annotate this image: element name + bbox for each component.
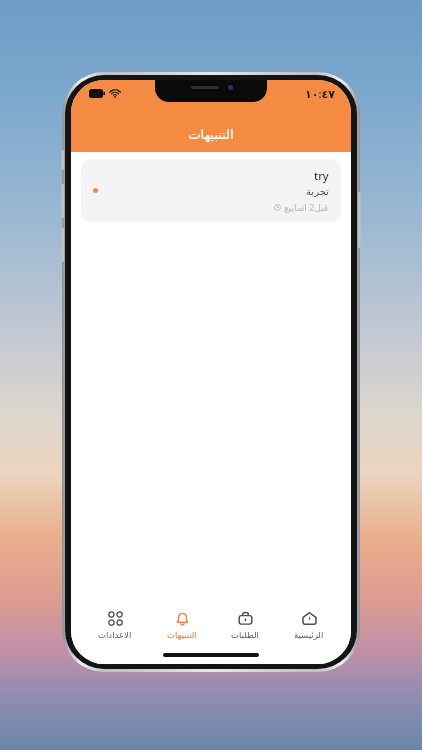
staticText: الاعدادات [98,630,132,640]
other: Notifications [174,610,191,627]
button[interactable]: try [81,159,341,222]
staticText: الطلبات [231,630,259,640]
other: Orders [237,610,254,627]
staticText: ١٠:٤٧ [305,86,335,101]
staticText: try [314,168,329,183]
button[interactable]: Notifications [159,608,205,642]
other: Home [301,610,318,627]
button[interactable]: Orders [223,608,267,642]
button[interactable]: Settings [90,608,140,642]
staticText: التنبيهات [71,127,351,142]
button[interactable]: Home [286,608,332,642]
staticText: الرئيسية [294,630,324,640]
staticText: التنبيهات [167,630,197,640]
staticText: قبل2 اسابيع [284,201,329,213]
other: Settings [107,610,124,627]
staticText: تجربة [306,186,329,198]
